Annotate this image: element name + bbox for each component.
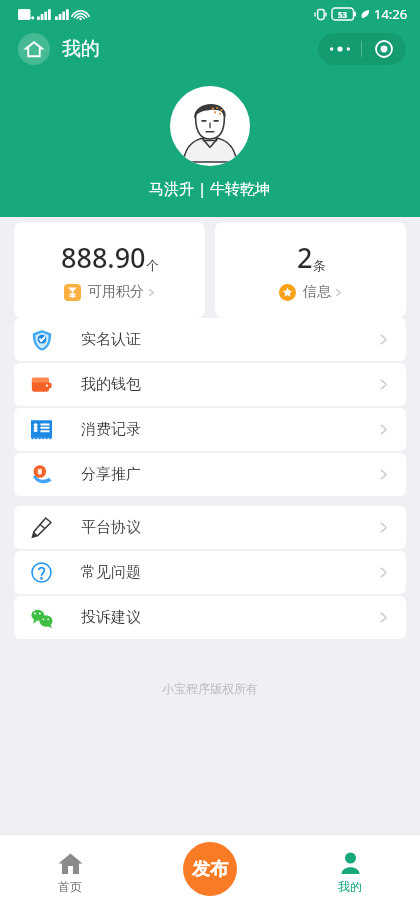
staticText: 信息 <box>303 283 331 301</box>
button[interactable]: 常见问题 <box>14 551 406 594</box>
staticText: 马洪升 | 牛转乾坤 <box>149 178 271 198</box>
staticText: 2 <box>297 239 313 276</box>
staticText: 常见问题 <box>81 563 141 582</box>
button[interactable]: 发布 <box>183 842 237 896</box>
staticText: 投诉建议 <box>81 608 141 627</box>
button[interactable]: 首页 <box>0 834 140 910</box>
button[interactable]: 消费记录 <box>14 408 406 451</box>
button[interactable]: 我的 <box>280 834 420 910</box>
staticText: 条 <box>313 257 326 273</box>
staticText: 14:26 <box>374 5 408 23</box>
button[interactable]: 我的钱包 <box>14 363 406 406</box>
staticText: 平台协议 <box>81 518 141 537</box>
staticText: 53 <box>338 9 348 20</box>
button[interactable]: 2 <box>215 222 406 318</box>
button[interactable]: Home <box>14 29 104 69</box>
staticText: 我的钱包 <box>81 375 141 394</box>
staticText: 消费记录 <box>81 420 141 439</box>
staticText: 个 <box>146 257 159 273</box>
button[interactable]: Target <box>362 33 406 65</box>
button[interactable]: 实名认证 <box>14 318 406 361</box>
button[interactable]: 投诉建议 <box>14 596 406 639</box>
staticText: 分享推广 <box>81 465 141 484</box>
staticText: 发布 <box>192 858 228 881</box>
staticText: 可用积分 <box>88 283 144 301</box>
staticText: 小宝程序版权所有 <box>0 681 420 696</box>
button[interactable]: 888.90 <box>14 222 205 318</box>
staticText: 我的 <box>62 37 100 61</box>
staticText: 我的 <box>338 879 362 894</box>
staticText: 实名认证 <box>81 330 141 349</box>
button[interactable]: 平台协议 <box>14 506 406 549</box>
button[interactable]: 分享推广 <box>14 453 406 496</box>
other: Home <box>18 33 50 65</box>
staticText: 888.90 <box>61 239 146 276</box>
button[interactable]: More options <box>318 33 361 65</box>
staticText: 首页 <box>58 879 82 894</box>
